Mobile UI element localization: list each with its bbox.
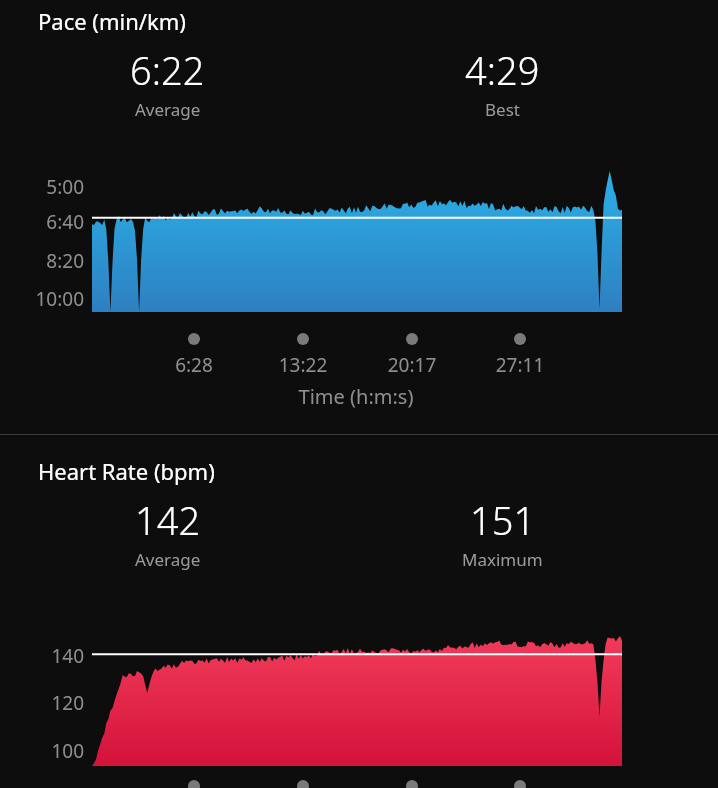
staticText: 8:20 — [0, 248, 84, 274]
staticText: 6:40 — [0, 209, 84, 235]
staticText: 140 — [0, 643, 84, 669]
staticText: Pace (min/km) — [38, 6, 186, 36]
staticText: 6:22 — [130, 44, 205, 96]
staticText: Time (h:m:s) — [0, 383, 712, 410]
button[interactable]: 151 — [335, 494, 670, 571]
staticText: 10:00 — [0, 286, 84, 312]
button[interactable]: 4:29 — [335, 44, 670, 121]
staticText: 20:17 — [362, 352, 462, 378]
button[interactable]: Pace chart — [92, 168, 622, 312]
staticText: 151 — [470, 494, 536, 546]
button[interactable]: 142 — [0, 494, 335, 571]
staticText: Maximum — [462, 548, 543, 571]
staticText: Average — [135, 98, 201, 121]
staticText: 13:22 — [253, 352, 353, 378]
staticText: 120 — [0, 690, 84, 716]
staticText: 5:00 — [0, 174, 84, 200]
staticText: 27:11 — [470, 352, 570, 378]
staticText: 100 — [0, 738, 84, 764]
staticText: Heart Rate (bpm) — [38, 456, 215, 486]
staticText: 142 — [135, 494, 201, 546]
staticText: Best — [485, 98, 520, 121]
button[interactable]: 6:22 — [0, 44, 335, 121]
staticText: 4:29 — [465, 44, 540, 96]
staticText: Average — [135, 548, 201, 571]
staticText: 6:28 — [144, 352, 244, 378]
button[interactable]: Heart rate chart — [92, 620, 622, 766]
